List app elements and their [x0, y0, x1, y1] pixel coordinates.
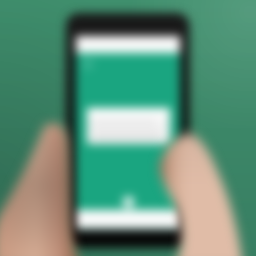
- button[interactable]: Add: [120, 193, 137, 210]
